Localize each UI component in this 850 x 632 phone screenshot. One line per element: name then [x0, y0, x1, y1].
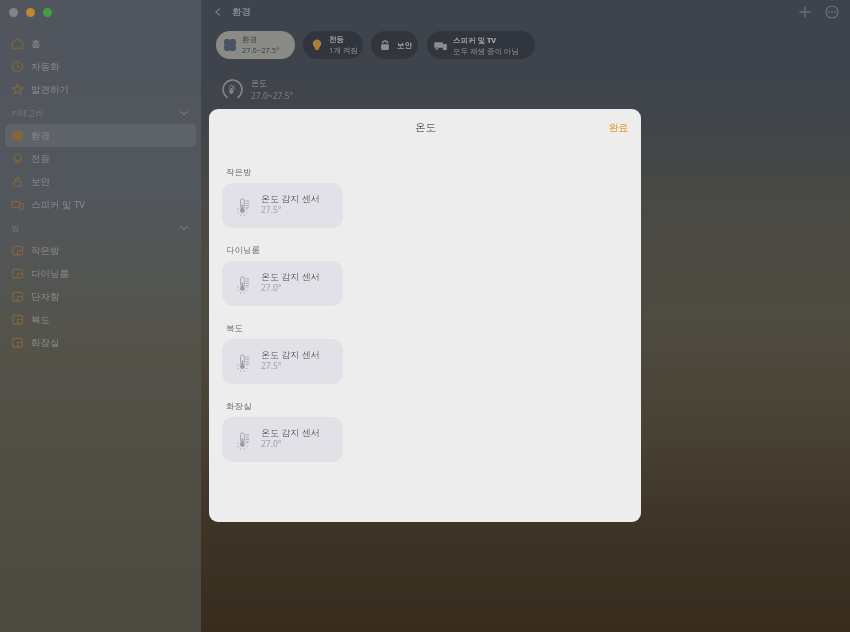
button[interactable]: 스피커 및 TV	[5, 193, 196, 216]
staticText: 스피커 및 TV	[453, 35, 496, 45]
staticText: 환경	[242, 35, 257, 44]
button[interactable]: 온도 감지 센서	[222, 417, 343, 462]
button[interactable]: 홈	[5, 32, 196, 55]
button[interactable]: Add	[796, 3, 814, 21]
staticText: 전등	[329, 35, 344, 44]
button[interactable]: Close	[9, 8, 18, 17]
button[interactable]: 완료	[596, 113, 641, 143]
button[interactable]: 보안	[5, 170, 196, 193]
staticText: 보안	[397, 41, 412, 50]
button[interactable]: More options	[823, 3, 841, 21]
staticText: 온도	[251, 78, 267, 88]
button[interactable]: 온도 감지 센서	[222, 183, 343, 228]
staticText: 방	[11, 223, 19, 233]
button[interactable]: 환경	[216, 31, 295, 59]
button[interactable]: 단자함	[5, 285, 196, 308]
staticText: 27.0~27.5°	[251, 90, 294, 102]
staticText: 자동화	[31, 61, 60, 73]
staticText: 온도 감지 센서	[261, 270, 320, 282]
staticText: 환경	[232, 6, 251, 18]
staticText: 온도	[415, 121, 436, 134]
staticText: 27.5°	[261, 360, 282, 372]
staticText: 복도	[226, 323, 243, 334]
staticText: 온도 감지 센서	[261, 348, 320, 360]
staticText: 1개 켜짐	[329, 45, 358, 55]
staticText: 발견하기	[31, 84, 69, 96]
staticText: 27.0°	[261, 282, 282, 294]
staticText: 카테고리	[11, 108, 43, 118]
button[interactable]: Back	[211, 5, 225, 19]
staticText: 전등	[31, 153, 50, 165]
button[interactable]: 다이닝룸	[5, 262, 196, 285]
button[interactable]: 환경	[5, 124, 196, 147]
staticText: 작은방	[226, 167, 252, 178]
staticText: 27.0°	[261, 438, 282, 450]
staticText: 모두 재생 중이 아님	[453, 46, 519, 56]
button[interactable]: 전등	[5, 147, 196, 170]
button[interactable]: 복도	[5, 308, 196, 331]
staticText: 화장실	[226, 401, 252, 412]
staticText: 27.5°	[261, 204, 282, 216]
button[interactable]: 발견하기	[5, 78, 196, 101]
staticText: 화장실	[31, 337, 60, 349]
staticText: 온도 감지 센서	[261, 426, 320, 438]
staticText: 27.0~27.5°	[242, 45, 280, 55]
button[interactable]: 자동화	[5, 55, 196, 78]
staticText: 다이닝룸	[31, 268, 69, 280]
staticText: 홈	[31, 38, 41, 50]
button[interactable]: 전등	[303, 31, 363, 59]
staticText: 복도	[31, 314, 50, 326]
staticText: 작은방	[31, 245, 60, 257]
button[interactable]: 작은방	[5, 239, 196, 262]
button[interactable]: 보안	[371, 31, 418, 59]
button[interactable]: Minimize	[26, 8, 35, 17]
staticText: 보안	[31, 176, 50, 188]
staticText: 스피커 및 TV	[31, 198, 85, 211]
staticText: 온도 감지 센서	[261, 192, 320, 204]
staticText: 다이닝룸	[226, 245, 260, 256]
staticText: 완료	[609, 122, 628, 134]
button[interactable]: 온도 감지 센서	[222, 339, 343, 384]
button[interactable]: 화장실	[5, 331, 196, 354]
staticText: 환경	[31, 130, 50, 142]
staticText: 단자함	[31, 291, 60, 303]
button[interactable]: Maximize	[43, 8, 52, 17]
button[interactable]: 온도 감지 센서	[222, 261, 343, 306]
button[interactable]: 스피커 및 TV	[427, 31, 535, 59]
